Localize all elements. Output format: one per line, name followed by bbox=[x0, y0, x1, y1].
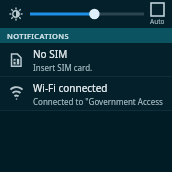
staticText: Insert SIM card. bbox=[33, 62, 93, 73]
other: SIM card bbox=[7, 51, 25, 69]
staticText: Wi-Fi connected bbox=[33, 81, 108, 95]
button[interactable]: Brightness bbox=[6, 4, 26, 24]
staticText: NOTIFICATIONS bbox=[7, 31, 70, 41]
button[interactable]: SIM card bbox=[0, 43, 172, 76]
other: Wi-Fi bbox=[7, 85, 25, 103]
staticText: Auto bbox=[150, 17, 165, 26]
staticText: No SIM bbox=[33, 47, 68, 61]
button[interactable]: Brightness level bbox=[28, 4, 146, 24]
button[interactable]: Wi-Fi bbox=[0, 77, 172, 110]
staticText: Connected to "Government Access Point.. bbox=[33, 96, 168, 107]
button[interactable]: Auto bbox=[150, 3, 165, 26]
